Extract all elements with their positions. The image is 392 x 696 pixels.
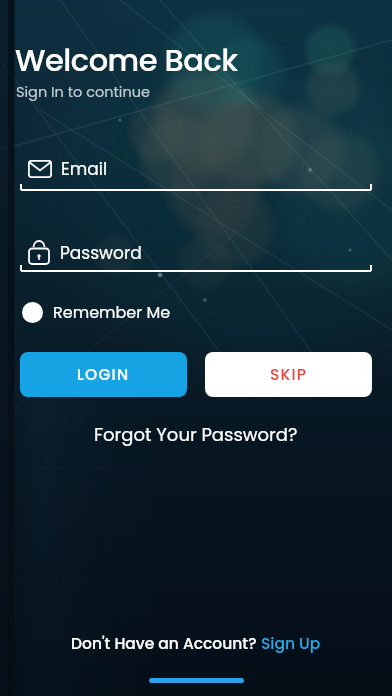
staticText: Email xyxy=(61,157,108,181)
button[interactable]: LOGIN xyxy=(20,352,187,397)
button[interactable]: Sign Up xyxy=(261,633,321,655)
button[interactable]: Remember Me xyxy=(20,301,171,323)
staticText: Remember Me xyxy=(53,301,171,323)
button[interactable]: Email xyxy=(20,157,372,191)
staticText: Sign In to continue xyxy=(16,82,150,102)
button[interactable]: Forgot Your Password? xyxy=(94,422,298,447)
staticText: LOGIN xyxy=(77,364,130,386)
staticText: Don't Have an Account? xyxy=(71,633,261,655)
staticText: Welcome Back xyxy=(15,39,238,82)
button[interactable]: SKIP xyxy=(205,352,372,397)
staticText: SKIP xyxy=(270,364,308,386)
staticText: Password xyxy=(60,241,142,265)
button[interactable]: Password xyxy=(20,240,372,272)
